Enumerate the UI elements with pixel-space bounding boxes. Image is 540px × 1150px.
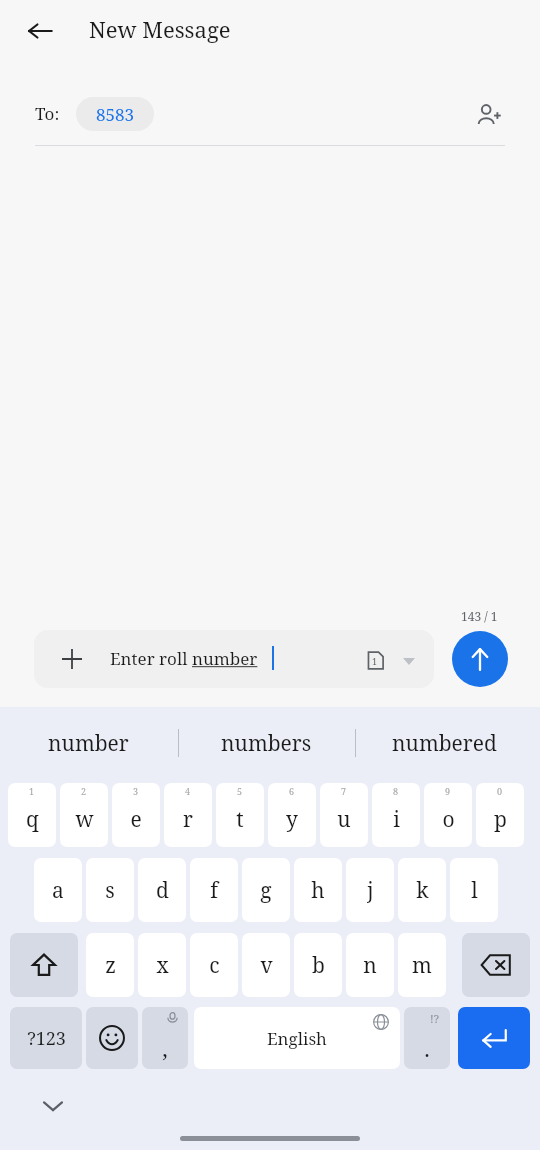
button[interactable]: a [34,858,82,922]
button[interactable]: numbers [180,715,352,771]
staticText: z [105,951,116,980]
button[interactable]: f [190,858,238,922]
staticText: !? [430,1011,439,1026]
staticText: number [192,647,258,670]
button[interactable]: 2 [60,783,108,847]
button[interactable]: Attach [34,630,434,688]
staticText: 2 [81,785,87,797]
button[interactable]: Comma, voice input [142,1007,188,1069]
staticText: q [26,805,39,834]
staticText: h [311,876,325,905]
button[interactable]: Emoji [86,1007,138,1069]
button[interactable]: 7 [320,783,368,847]
staticText: 5 [237,785,243,797]
button[interactable]: 6 [268,783,316,847]
staticText: . [424,1033,430,1063]
button[interactable]: 3 [112,783,160,847]
staticText: s [105,876,115,905]
button[interactable]: 0 [476,783,524,847]
staticText: x [156,951,169,980]
staticText: 143 / 1 [461,608,498,624]
staticText: d [156,876,169,905]
staticText: 1 [29,785,35,797]
staticText: number [48,729,129,758]
button[interactable]: z [86,933,134,997]
button[interactable]: 1 [8,783,56,847]
button[interactable]: English [194,1007,400,1069]
button[interactable]: s [86,858,134,922]
button[interactable]: ?123 [10,1007,82,1069]
staticText: k [416,876,429,905]
staticText: b [312,951,325,980]
button[interactable]: Hide keyboard [32,1085,74,1127]
button[interactable]: b [294,933,342,997]
button[interactable]: x [138,933,186,997]
button[interactable]: j [346,858,394,922]
staticText: To: [35,102,60,125]
button[interactable]: l [450,858,498,922]
staticText: g [260,876,272,905]
button[interactable]: Add recipient [466,92,512,138]
button[interactable]: Enter [458,1007,530,1069]
staticText: w [75,805,94,834]
button[interactable]: numbered [358,715,530,771]
staticText: m [412,951,432,980]
button[interactable]: Back [18,9,62,53]
button[interactable]: SIM 1 [362,647,388,673]
staticText: numbers [221,729,312,758]
staticText: Enter roll [110,647,192,670]
staticText: numbered [392,729,497,758]
staticText: t [236,805,244,834]
button[interactable]: 5 [216,783,264,847]
staticText: u [337,805,351,834]
button[interactable]: 8583 [76,97,154,131]
staticText: New Message [89,14,231,44]
staticText: l [471,876,478,905]
button[interactable]: d [138,858,186,922]
staticText: i [393,805,400,834]
staticText: 6 [289,785,295,797]
button[interactable]: Backspace [462,933,530,997]
staticText: 0 [497,785,503,797]
staticText: p [494,805,507,834]
button[interactable]: 8 [372,783,420,847]
button[interactable]: v [242,933,290,997]
button[interactable]: c [190,933,238,997]
staticText: r [183,805,193,834]
staticText: y [286,805,298,834]
staticText: English [267,1027,327,1050]
staticText: c [209,951,220,980]
button[interactable]: h [294,858,342,922]
staticText: 8583 [96,103,135,126]
staticText: o [442,805,455,834]
staticText: 1 [372,655,378,667]
button[interactable]: Shift [10,933,78,997]
button[interactable]: Period, symbols [404,1007,450,1069]
button[interactable]: number [2,715,174,771]
staticText: n [363,951,377,980]
staticText: , [162,1033,168,1063]
staticText: v [260,951,273,980]
button[interactable]: 4 [164,783,212,847]
button[interactable]: Choose SIM [398,650,420,672]
button[interactable]: m [398,933,446,997]
staticText: 8 [393,785,399,797]
staticText: 7 [341,785,347,797]
staticText: 3 [133,785,139,797]
button[interactable]: k [398,858,446,922]
staticText: j [367,876,374,905]
button[interactable]: 9 [424,783,472,847]
button[interactable]: n [346,933,394,997]
staticText: ?123 [27,1026,66,1051]
button[interactable]: Attach [58,645,86,673]
staticText: a [52,876,64,905]
staticText: 4 [185,785,191,797]
button[interactable]: Send [452,631,508,687]
staticText: f [210,876,218,905]
staticText: e [130,805,142,834]
button[interactable]: g [242,858,290,922]
staticText: 9 [445,785,451,797]
